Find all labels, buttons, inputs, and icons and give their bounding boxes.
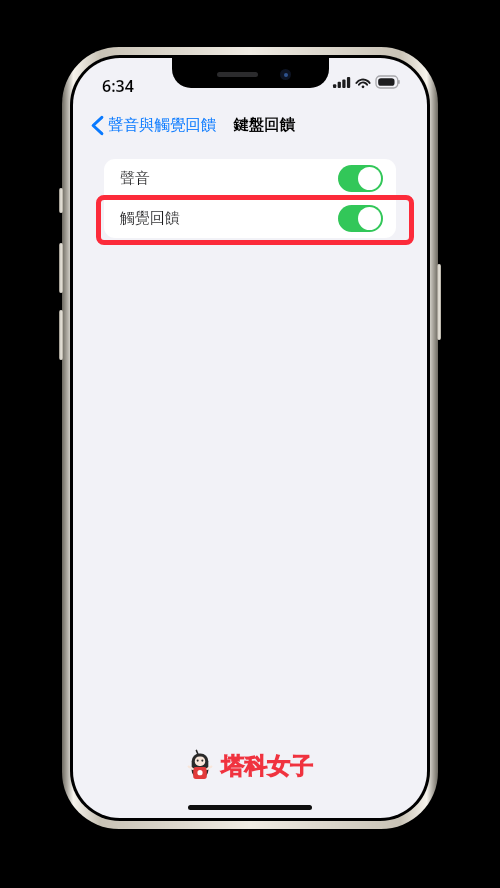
button[interactable]: Toggle, on (338, 165, 383, 192)
button[interactable]: Toggle, on (338, 205, 383, 232)
button[interactable]: 聲音 (104, 159, 396, 198)
staticText: 聲音 (120, 169, 150, 188)
staticText: 6:34 (102, 75, 134, 97)
button[interactable]: 聲音與觸覺回饋 (88, 110, 221, 140)
staticText: 聲音與觸覺回饋 (108, 115, 217, 135)
staticText: 鍵盤回饋 (233, 115, 295, 135)
staticText: 塔科女子 (221, 752, 313, 781)
button[interactable]: 觸覺回饋 (104, 199, 396, 238)
staticText: 觸覺回饋 (120, 209, 180, 228)
